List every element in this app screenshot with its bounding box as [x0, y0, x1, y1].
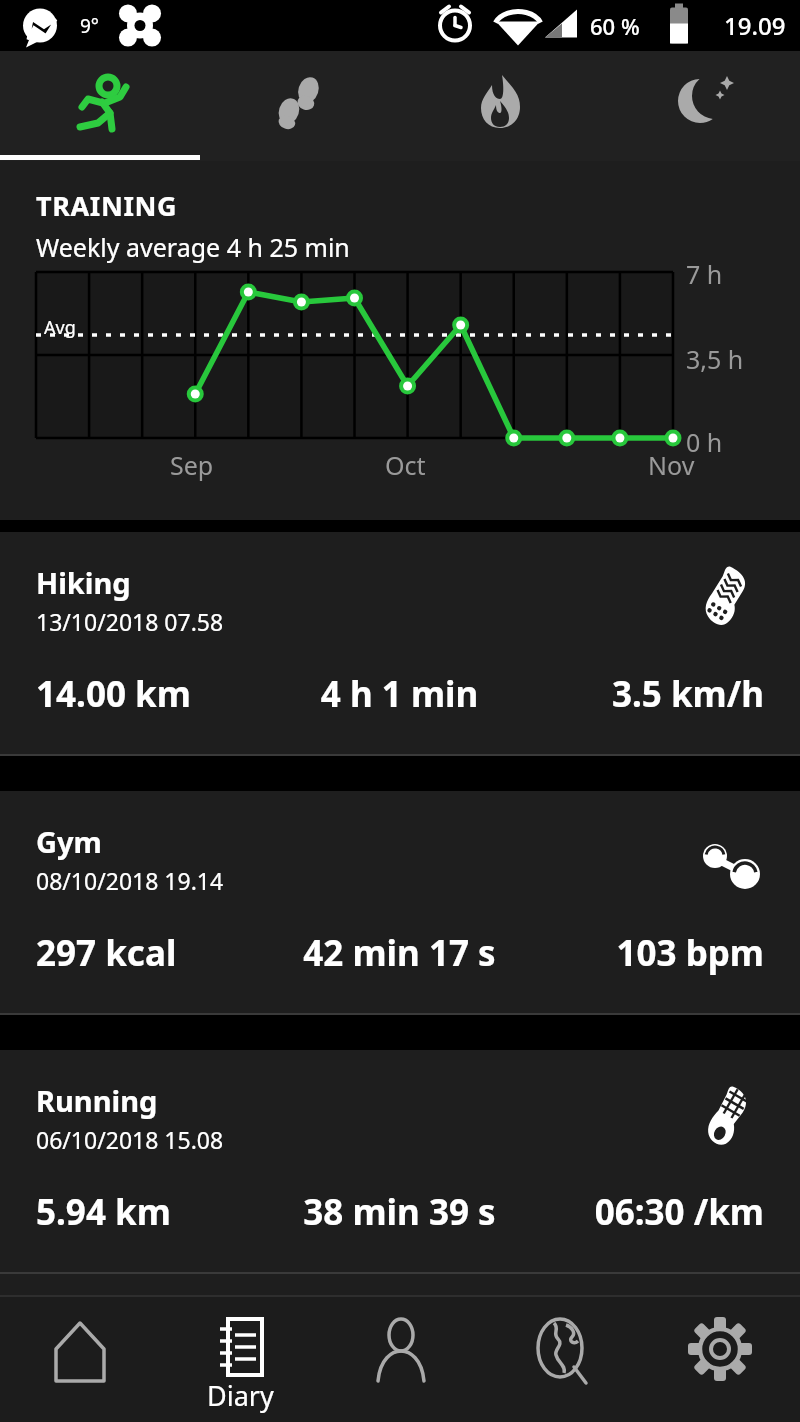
- staticText: 5.94 km: [36, 1188, 278, 1236]
- staticText: Diary: [207, 1377, 274, 1414]
- staticText: 297 kcal: [36, 929, 278, 977]
- button[interactable]: Diary: [160, 1297, 320, 1422]
- staticText: 14.00 km: [36, 670, 278, 718]
- button[interactable]: Profile: [320, 1297, 480, 1422]
- staticText: Running: [36, 1081, 158, 1120]
- button[interactable]: Home: [0, 1297, 160, 1422]
- staticText: Oct: [385, 448, 426, 482]
- staticText: Gym: [36, 822, 102, 861]
- staticText: Weekly average 4 h 25 min: [36, 230, 350, 264]
- staticText: 19.09: [724, 9, 786, 42]
- staticText: 3.5 km/h: [521, 670, 764, 718]
- staticText: Hiking: [36, 563, 131, 602]
- button[interactable]: Training: [0, 51, 200, 161]
- staticText: 42 min 17 s: [278, 929, 521, 977]
- staticText: 103 bpm: [521, 929, 764, 977]
- staticText: 7 h: [686, 257, 723, 291]
- staticText: 60 %: [590, 11, 640, 41]
- staticText: Avg: [44, 315, 76, 340]
- staticText: 38 min 39 s: [278, 1188, 521, 1236]
- button[interactable]: Settings: [640, 1297, 800, 1422]
- staticText: 0 h: [686, 425, 723, 459]
- staticText: 3,5 h: [686, 342, 744, 376]
- button[interactable]: Hiking: [0, 532, 800, 756]
- button[interactable]: Steps: [200, 51, 400, 161]
- staticText: 08/10/2018 19.14: [36, 865, 224, 896]
- staticText: 06/10/2018 15.08: [36, 1124, 224, 1155]
- button[interactable]: TRAINING: [0, 161, 800, 520]
- button[interactable]: Running: [0, 1050, 800, 1274]
- button[interactable]: Sleep: [600, 51, 800, 161]
- staticText: 4 h 1 min: [278, 670, 521, 718]
- staticText: 13/10/2018 07.58: [36, 606, 224, 637]
- staticText: 06:30 /km: [521, 1188, 764, 1236]
- staticText: Nov: [648, 448, 695, 482]
- staticText: Sep: [170, 448, 214, 482]
- button[interactable]: Calories: [400, 51, 600, 161]
- button[interactable]: Explore: [480, 1297, 640, 1422]
- staticText: 9°: [80, 13, 100, 39]
- button[interactable]: Gym: [0, 791, 800, 1015]
- staticText: TRAINING: [36, 187, 178, 224]
